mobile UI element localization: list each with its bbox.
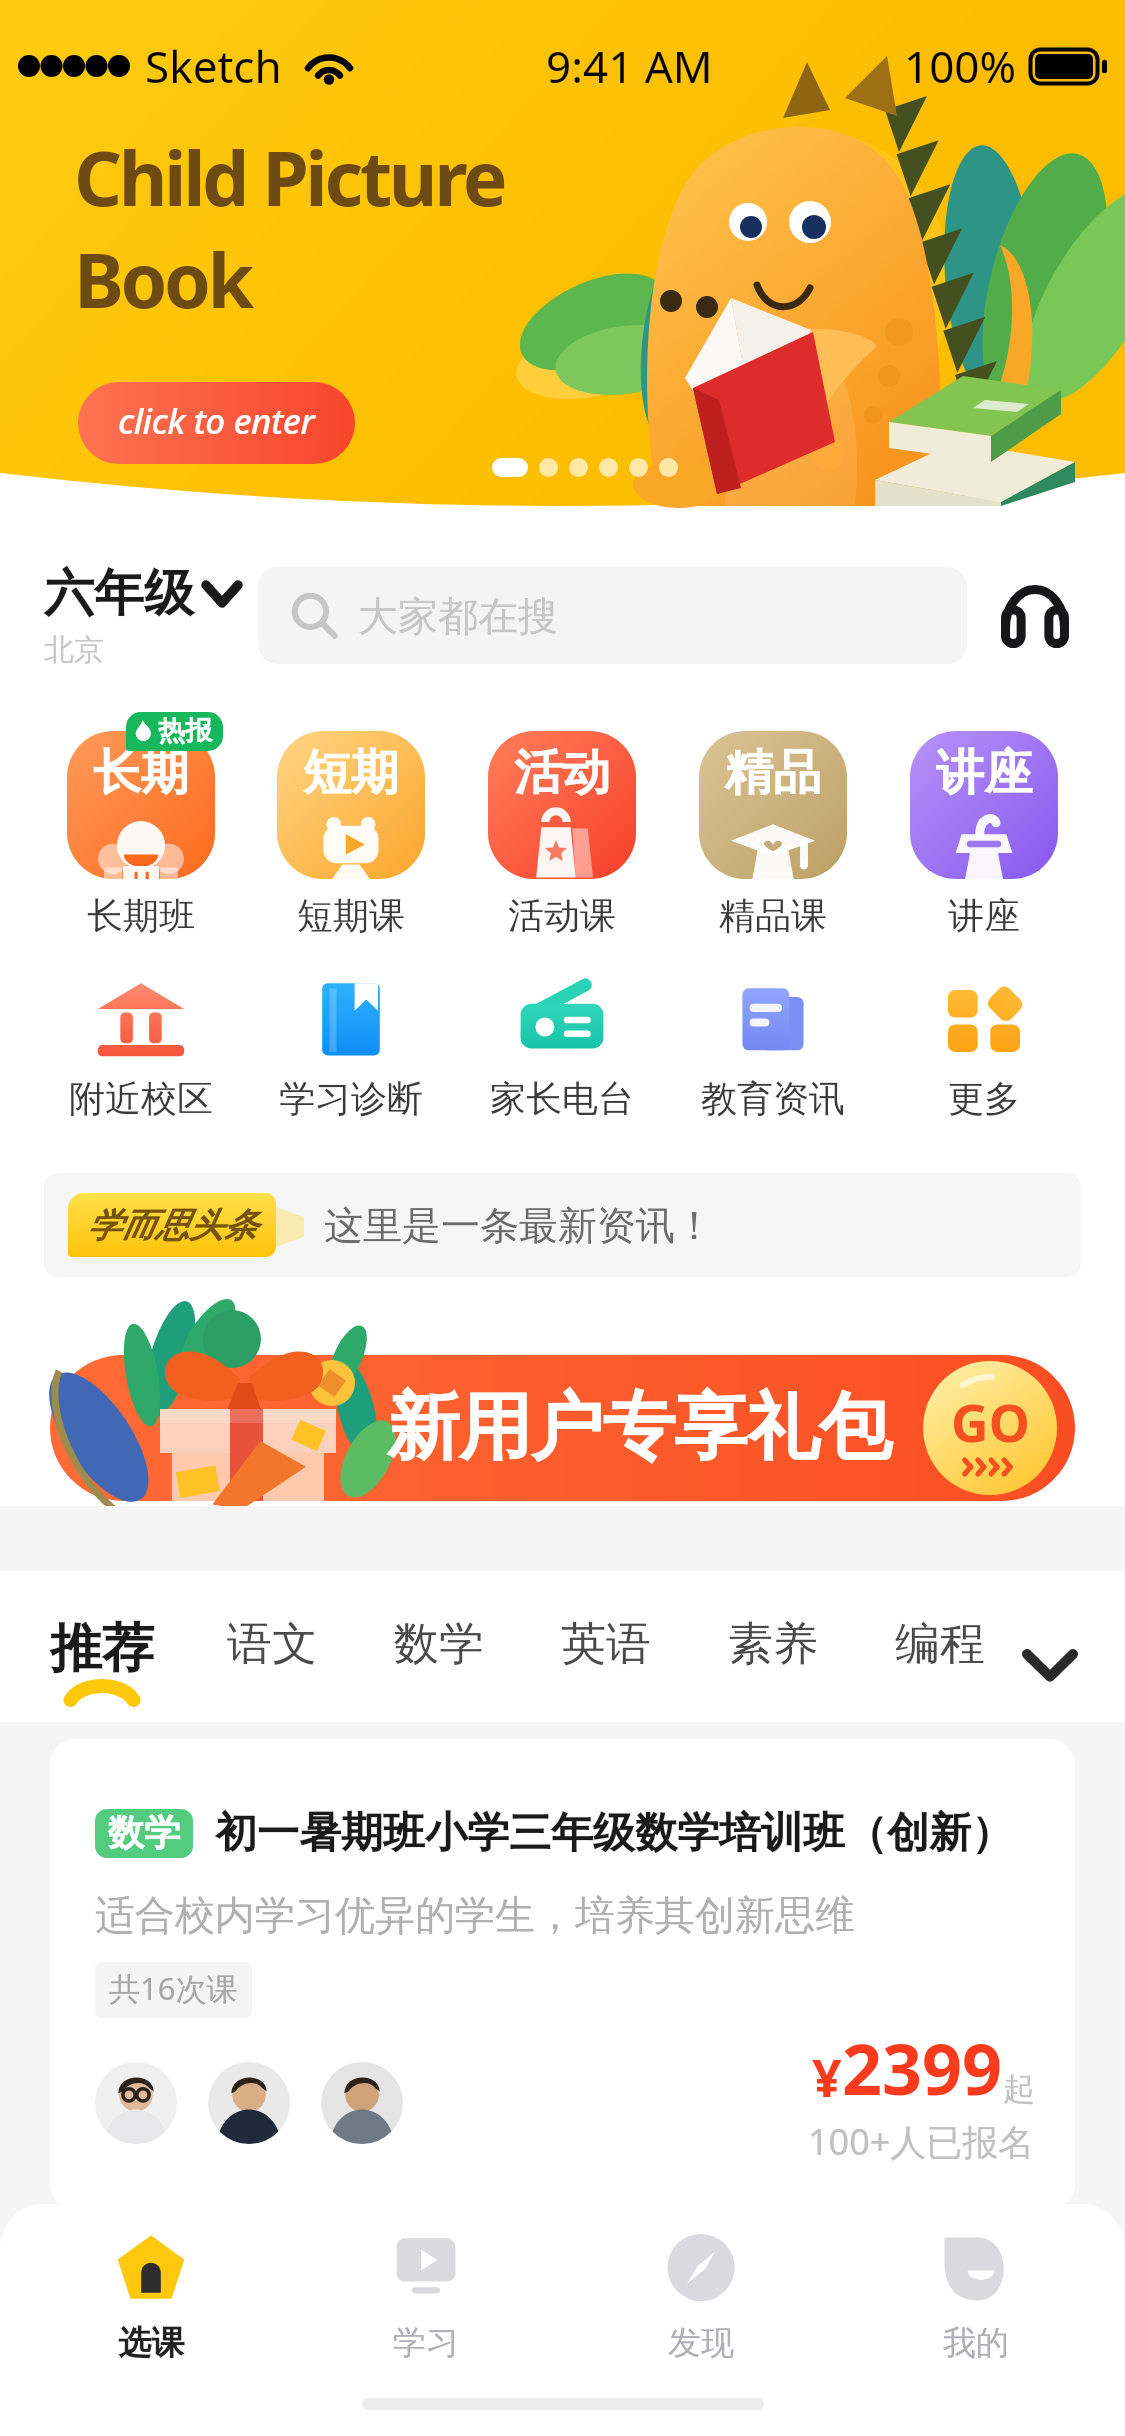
staticText: click to enter bbox=[118, 397, 315, 445]
staticText: 更多 bbox=[948, 1076, 1020, 1121]
button[interactable]: Listen bbox=[987, 567, 1083, 663]
staticText: 9:41 AM bbox=[546, 36, 713, 96]
button[interactable]: Expand categories bbox=[1013, 1628, 1087, 1702]
staticText: 语文 bbox=[227, 1616, 317, 1673]
staticText: 学习 bbox=[393, 2322, 459, 2364]
button[interactable]: 更多 bbox=[878, 978, 1089, 1121]
button[interactable]: 学习诊断 bbox=[246, 978, 456, 1121]
button[interactable]: 选课 bbox=[13, 2234, 288, 2364]
button[interactable]: 大家都在搜 bbox=[258, 567, 967, 664]
button[interactable]: 英语 bbox=[561, 1616, 728, 1673]
button[interactable]: 精品 bbox=[667, 712, 878, 938]
staticText: 六年级 bbox=[44, 562, 194, 625]
button[interactable]: 推荐 bbox=[50, 1616, 227, 1702]
staticText: 推荐 bbox=[50, 1616, 154, 1682]
staticText: 精品课 bbox=[719, 893, 827, 938]
staticText: 数学 bbox=[394, 1616, 484, 1673]
staticText: 短期 bbox=[303, 743, 399, 803]
staticText: 活动 bbox=[514, 743, 610, 803]
staticText: Child Picture bbox=[74, 126, 505, 228]
staticText: 精品 bbox=[725, 743, 821, 803]
staticText: 学习诊断 bbox=[279, 1076, 423, 1121]
staticText: Book bbox=[74, 228, 251, 330]
staticText: 英语 bbox=[561, 1616, 651, 1673]
button[interactable]: 数学 bbox=[394, 1616, 561, 1673]
button[interactable]: 讲座 bbox=[878, 712, 1089, 938]
button[interactable]: 素养 bbox=[728, 1616, 895, 1673]
staticText: 教育资讯 bbox=[701, 1076, 845, 1121]
staticText: 100+人已报名 bbox=[808, 2117, 1035, 2166]
staticText: 编程 bbox=[895, 1616, 985, 1673]
staticText: 起 bbox=[1003, 2069, 1035, 2109]
staticText: 附近校区 bbox=[69, 1076, 213, 1121]
button[interactable]: 长期 bbox=[36, 712, 246, 938]
staticText: 我的 bbox=[943, 2322, 1009, 2364]
button[interactable]: 学而思头条 bbox=[44, 1173, 1081, 1277]
staticText: 新用户专享礼包 bbox=[387, 1382, 891, 1474]
staticText: 家长电台 bbox=[490, 1076, 634, 1121]
staticText: 学而思头条 bbox=[87, 1204, 257, 1247]
staticText: 素养 bbox=[728, 1616, 818, 1673]
button[interactable]: 附近校区 bbox=[36, 978, 246, 1121]
staticText: 这里是一条最新资讯！ bbox=[324, 1201, 714, 1250]
staticText: 100% bbox=[904, 36, 1017, 96]
staticText: 长期 bbox=[93, 743, 189, 803]
staticText: 长期班 bbox=[87, 893, 195, 938]
staticText: Sketch bbox=[145, 36, 282, 96]
staticText: 短期课 bbox=[297, 893, 405, 938]
button[interactable]: 编程 bbox=[895, 1616, 985, 1673]
staticText: 讲座 bbox=[936, 743, 1032, 803]
staticText: 2399 bbox=[842, 2020, 1003, 2115]
staticText: 发现 bbox=[668, 2322, 734, 2364]
button[interactable]: 活动 bbox=[456, 712, 667, 938]
staticText: 讲座 bbox=[948, 893, 1020, 938]
button[interactable]: 教育资讯 bbox=[667, 978, 878, 1121]
staticText: GO bbox=[951, 1386, 1030, 1457]
button[interactable] bbox=[50, 1355, 1075, 1501]
staticText: 选课 bbox=[118, 2322, 184, 2364]
staticText: 热报 bbox=[158, 714, 212, 748]
staticText: 数学 bbox=[108, 1810, 180, 1855]
button[interactable]: 数学 bbox=[50, 1739, 1075, 2210]
button[interactable]: 学习 bbox=[288, 2234, 563, 2364]
button[interactable]: 六年级 bbox=[44, 562, 258, 669]
staticText: 北京 bbox=[44, 631, 104, 669]
button[interactable]: 短期 bbox=[246, 712, 456, 938]
button[interactable]: 我的 bbox=[838, 2234, 1113, 2364]
button[interactable]: click to enter bbox=[78, 382, 355, 464]
staticText: 共16次课 bbox=[109, 1967, 238, 2009]
staticText: 大家都在搜 bbox=[358, 591, 558, 641]
button[interactable]: 家长电台 bbox=[456, 978, 667, 1121]
staticText: 活动课 bbox=[508, 893, 616, 938]
button[interactable]: 语文 bbox=[227, 1616, 394, 1673]
button[interactable]: 发现 bbox=[563, 2234, 838, 2364]
staticText: ¥ bbox=[812, 2041, 842, 2112]
staticText: 初一暑期班小学三年级数学培训班（创新） bbox=[215, 1807, 1013, 1860]
staticText: 适合校内学习优异的学生，培养其创新思维 bbox=[95, 1890, 855, 1940]
